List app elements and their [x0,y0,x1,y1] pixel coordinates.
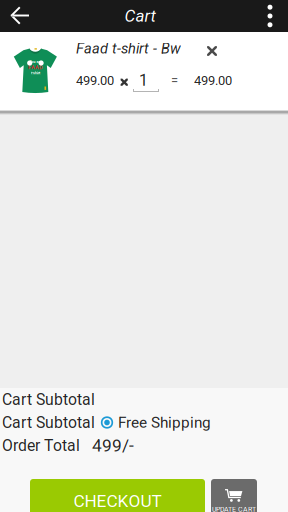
button[interactable]: More options [252,0,288,32]
staticText: Faad t-shirt - Bw [76,40,181,57]
button[interactable]: Remove item [199,39,225,63]
staticText: You are [29,60,41,64]
staticText: CHECKOUT [73,491,161,511]
staticText: Cart Subtotal [2,413,95,432]
staticText: 1 [139,71,148,90]
staticText: 499.00 [194,73,232,88]
button[interactable]: UPDATE CART [211,479,257,512]
staticText: UPDATE CART [212,505,256,512]
staticText: Free Shipping [118,413,211,431]
button[interactable]: Back [0,0,40,32]
staticText: Cart [124,6,155,26]
button[interactable]: CHECKOUT [30,479,205,512]
staticText: 499/- [92,435,134,456]
staticText: Cart Subtotal [2,390,95,409]
staticText: = [171,73,178,88]
staticText: t-shirt [31,71,40,75]
staticText: FAAD [28,64,43,71]
staticText: Order Total [2,436,80,455]
button[interactable]: Free Shipping [95,413,211,431]
staticText: 499.00 [76,73,114,88]
